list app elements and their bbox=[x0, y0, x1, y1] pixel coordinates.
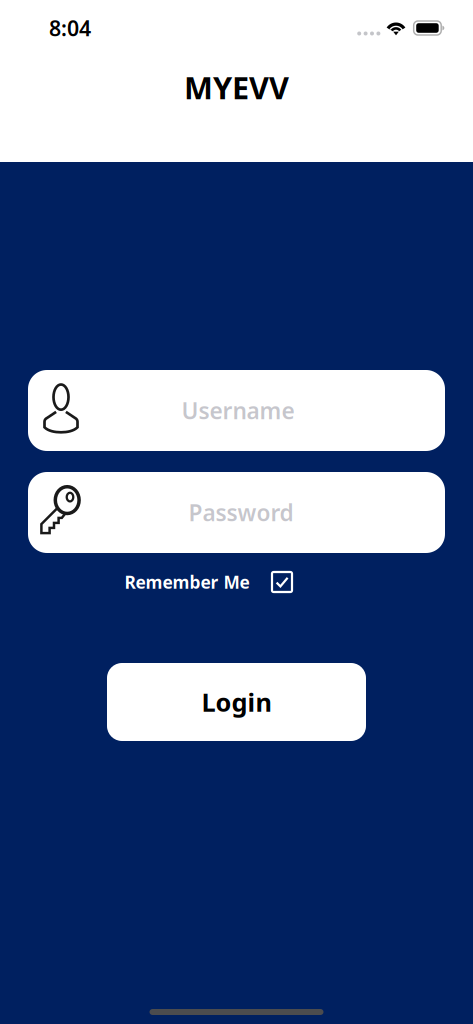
staticText: 8:04 bbox=[49, 14, 91, 42]
staticText: MYEVV bbox=[184, 67, 289, 108]
staticText: Password bbox=[188, 497, 293, 527]
button[interactable]: Remember Me, checked bbox=[118, 565, 298, 599]
staticText: Username bbox=[181, 395, 294, 425]
staticText: Remember Me bbox=[124, 570, 249, 593]
button[interactable]: Login bbox=[107, 663, 366, 741]
button[interactable]: Username bbox=[28, 370, 445, 451]
button[interactable]: Password bbox=[28, 472, 445, 553]
staticText: Login bbox=[201, 685, 271, 719]
